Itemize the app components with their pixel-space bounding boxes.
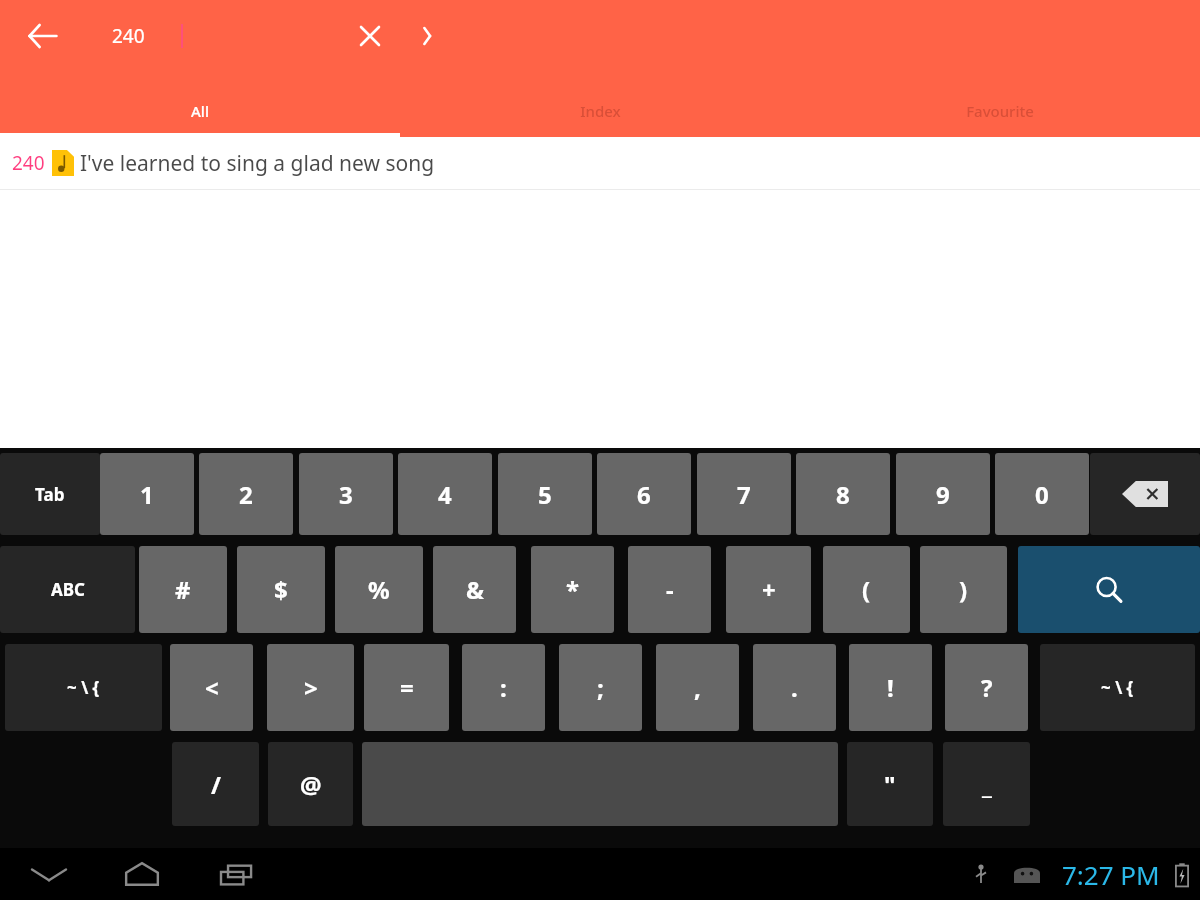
staticText: 1	[140, 478, 154, 511]
button[interactable]: 7	[697, 453, 791, 535]
staticText: /	[211, 768, 221, 801]
button[interactable]: 6	[597, 453, 691, 535]
button[interactable]: %	[335, 546, 423, 633]
staticText: 5	[538, 478, 552, 511]
staticText: +	[762, 573, 776, 606]
button[interactable]: 3	[299, 453, 393, 535]
button[interactable]: _	[943, 742, 1030, 826]
button[interactable]: 1	[100, 453, 194, 535]
button[interactable]: 5	[498, 453, 592, 535]
staticText: Index	[580, 101, 621, 121]
staticText: 0	[1035, 478, 1049, 511]
button[interactable]: 0	[995, 453, 1089, 535]
button[interactable]: #	[139, 546, 227, 633]
staticText: Tab	[35, 483, 65, 506]
staticText: 240	[112, 23, 145, 49]
button[interactable]: 8	[796, 453, 890, 535]
staticText: 7:27 PM	[1062, 857, 1160, 892]
button[interactable]: .	[753, 644, 836, 731]
staticText: ~ \ {	[67, 676, 100, 699]
button[interactable]: Backspace	[1090, 453, 1200, 535]
button[interactable]: >	[267, 644, 354, 731]
staticText: &	[466, 573, 484, 606]
staticText: ~ \ {	[1101, 676, 1134, 699]
button[interactable]: ~ \ {	[5, 644, 162, 731]
staticText: ,	[694, 671, 701, 704]
button[interactable]: $	[237, 546, 325, 633]
button[interactable]: Tab	[0, 453, 100, 535]
button[interactable]: Recent apps	[210, 848, 264, 900]
staticText: #	[175, 573, 191, 606]
button[interactable]: 2	[199, 453, 293, 535]
staticText: I've learned to sing a glad new song	[80, 149, 435, 178]
staticText: ;	[597, 671, 604, 704]
button[interactable]: (	[823, 546, 910, 633]
button[interactable]: Back	[22, 15, 64, 57]
staticText: "	[884, 768, 896, 801]
button[interactable]: ;	[559, 644, 642, 731]
button[interactable]: Search	[1018, 546, 1200, 633]
staticText: 240	[12, 150, 45, 176]
staticText: <	[205, 671, 219, 704]
button[interactable]: ,	[656, 644, 739, 731]
button[interactable]: 4	[398, 453, 492, 535]
staticText: >	[304, 671, 318, 704]
button[interactable]: Favourite	[800, 85, 1200, 137]
staticText: ?	[981, 671, 993, 704]
staticText: !	[887, 671, 894, 704]
button[interactable]: ?	[945, 644, 1028, 731]
button[interactable]: *	[531, 546, 614, 633]
staticText: 4	[438, 478, 452, 511]
button[interactable]: All	[0, 85, 400, 137]
button[interactable]: :	[462, 644, 545, 731]
button[interactable]: <	[170, 644, 253, 731]
button[interactable]: =	[364, 644, 449, 731]
staticText: =	[400, 671, 414, 704]
staticText: *	[566, 573, 580, 606]
staticText: @	[300, 768, 322, 801]
button[interactable]: "	[847, 742, 933, 826]
button[interactable]: /	[172, 742, 259, 826]
staticText: :	[500, 671, 507, 704]
button[interactable]: ~ \ {	[1040, 644, 1195, 731]
staticText: All	[191, 101, 209, 121]
button[interactable]: )	[920, 546, 1007, 633]
button[interactable]: -	[628, 546, 711, 633]
staticText: .	[791, 671, 798, 704]
staticText: $	[274, 573, 288, 606]
button[interactable]: 240	[0, 137, 1200, 189]
staticText: 7	[737, 478, 751, 511]
button[interactable]: Clear	[348, 14, 392, 58]
button[interactable]: +	[726, 546, 811, 633]
staticText: 9	[936, 478, 950, 511]
staticText: Favourite	[966, 101, 1034, 121]
button[interactable]: Next	[405, 14, 449, 58]
staticText: 6	[637, 478, 651, 511]
staticText: 2	[239, 478, 253, 511]
staticText: %	[368, 573, 390, 606]
button[interactable]: @	[268, 742, 353, 826]
button[interactable]: Home	[115, 848, 169, 900]
button[interactable]: !	[849, 644, 932, 731]
button[interactable]: ABC	[0, 546, 135, 633]
staticText: -	[666, 573, 674, 606]
staticText: )	[959, 573, 968, 606]
staticText: 3	[339, 478, 353, 511]
staticText: 8	[836, 478, 850, 511]
button[interactable]: &	[433, 546, 516, 633]
staticText: _	[982, 768, 992, 801]
staticText: (	[862, 573, 871, 606]
staticText: ABC	[51, 578, 85, 601]
button[interactable]: Back	[22, 848, 76, 900]
button[interactable]: 9	[896, 453, 990, 535]
